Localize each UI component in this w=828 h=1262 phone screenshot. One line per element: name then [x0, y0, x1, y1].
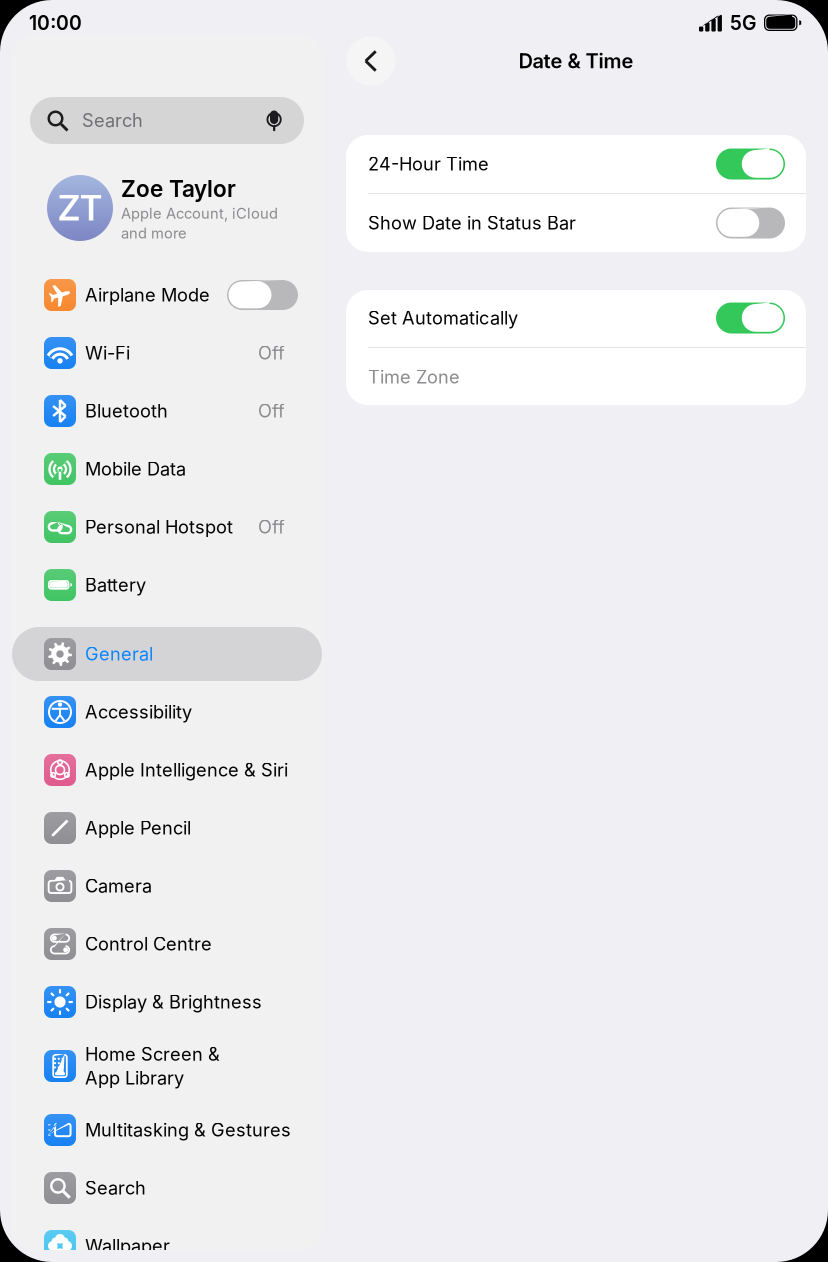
staticText: Off — [258, 516, 285, 538]
staticText: App Library — [85, 1067, 184, 1089]
staticText: Wallpaper — [85, 1235, 170, 1257]
button[interactable]: Camera — [12, 857, 322, 915]
button[interactable]: Show Date in Status Bar — [346, 194, 806, 252]
button[interactable]: Bluetooth — [12, 382, 322, 440]
staticText: Off — [258, 400, 285, 422]
staticText: Battery — [85, 574, 146, 596]
staticText: Home Screen & — [85, 1043, 220, 1065]
staticText: Accessibility — [85, 701, 192, 723]
staticText: Apple Intelligence & Siri — [85, 759, 288, 781]
button[interactable]: General — [12, 625, 322, 683]
button[interactable]: Control Centre — [12, 915, 322, 973]
staticText: Wi-Fi — [85, 342, 130, 364]
button[interactable]: 24-Hour Time — [346, 135, 806, 193]
button[interactable]: Set Automatically — [346, 289, 806, 347]
button[interactable]: Accessibility — [12, 683, 322, 741]
staticText: Mobile Data — [85, 458, 186, 480]
staticText: Search — [85, 1177, 146, 1199]
staticText: Multitasking & Gestures — [85, 1119, 291, 1141]
staticText: Camera — [85, 875, 152, 897]
button[interactable]: Home Screen & — [12, 1031, 322, 1101]
button[interactable]: Display & Brightness — [12, 973, 322, 1031]
staticText: Show Date in Status Bar — [368, 212, 576, 234]
button[interactable]: Apple Pencil — [12, 799, 322, 857]
staticText: General — [85, 643, 153, 665]
button[interactable]: Airplane Mode — [12, 266, 322, 324]
staticText: Control Centre — [85, 933, 212, 955]
staticText: 10:00 — [29, 11, 82, 35]
staticText: Search — [82, 109, 143, 131]
staticText: and more — [121, 224, 187, 242]
staticText: Set Automatically — [368, 307, 518, 329]
button[interactable]: Time Zone — [346, 348, 806, 406]
staticText: Apple Pencil — [85, 817, 191, 839]
button[interactable]: Apple Intelligence & Siri — [12, 741, 322, 799]
staticText: 24-Hour Time — [368, 153, 489, 175]
button[interactable]: Search — [12, 1159, 322, 1217]
button[interactable]: Personal Hotspot — [12, 498, 322, 556]
button[interactable]: Wallpaper — [12, 1217, 322, 1262]
button[interactable]: ZT — [12, 163, 322, 266]
staticText: Date & Time — [518, 49, 633, 73]
staticText: Apple Account, iCloud — [121, 204, 278, 222]
button[interactable]: Wi-Fi — [12, 324, 322, 382]
staticText: Display & Brightness — [85, 991, 262, 1013]
button[interactable]: Search — [30, 97, 304, 144]
staticText: Airplane Mode — [85, 284, 210, 306]
button[interactable]: Battery — [12, 556, 322, 614]
staticText: ZT — [58, 187, 102, 229]
staticText: Zoe Taylor — [121, 175, 236, 202]
button[interactable]: Back — [346, 36, 395, 86]
button[interactable]: Mobile Data — [12, 440, 322, 498]
staticText: Time Zone — [368, 366, 460, 388]
staticText: 5G — [730, 11, 756, 35]
button[interactable]: Multitasking & Gestures — [12, 1101, 322, 1159]
staticText: Personal Hotspot — [85, 516, 233, 538]
staticText: Bluetooth — [85, 400, 168, 422]
staticText: Off — [258, 342, 285, 364]
